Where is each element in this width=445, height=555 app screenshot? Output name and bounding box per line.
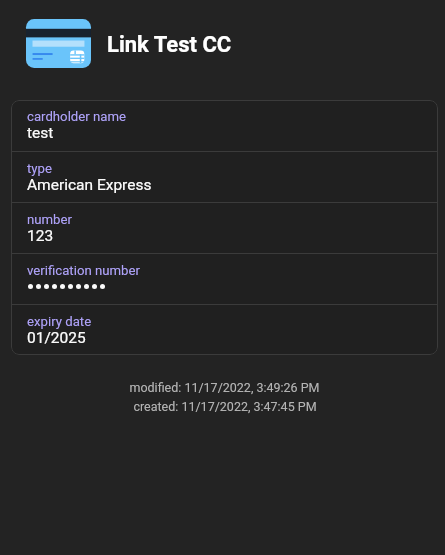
staticText: number [27,212,72,227]
button[interactable]: expiry date [11,304,438,355]
staticText: 01/2025 [27,329,86,347]
staticText: cardholder name [27,109,127,124]
staticText: test [27,124,54,142]
staticText: expiry date [27,314,92,329]
staticText: created: 11/17/2022, 3:47:45 PM [133,399,317,414]
button[interactable]: Credit card entry icon [26,19,91,68]
button[interactable]: verification number [11,253,438,304]
button[interactable]: number [11,202,438,253]
staticText: Link Test CC [107,32,232,58]
staticText: type [27,161,52,176]
staticText: American Express [27,176,152,194]
button[interactable]: type [11,151,438,202]
staticText: modified: 11/17/2022, 3:49:26 PM [129,380,320,395]
button[interactable]: cardholder name [11,100,438,151]
staticText: 123 [27,227,54,245]
staticText: verification number [27,263,140,278]
